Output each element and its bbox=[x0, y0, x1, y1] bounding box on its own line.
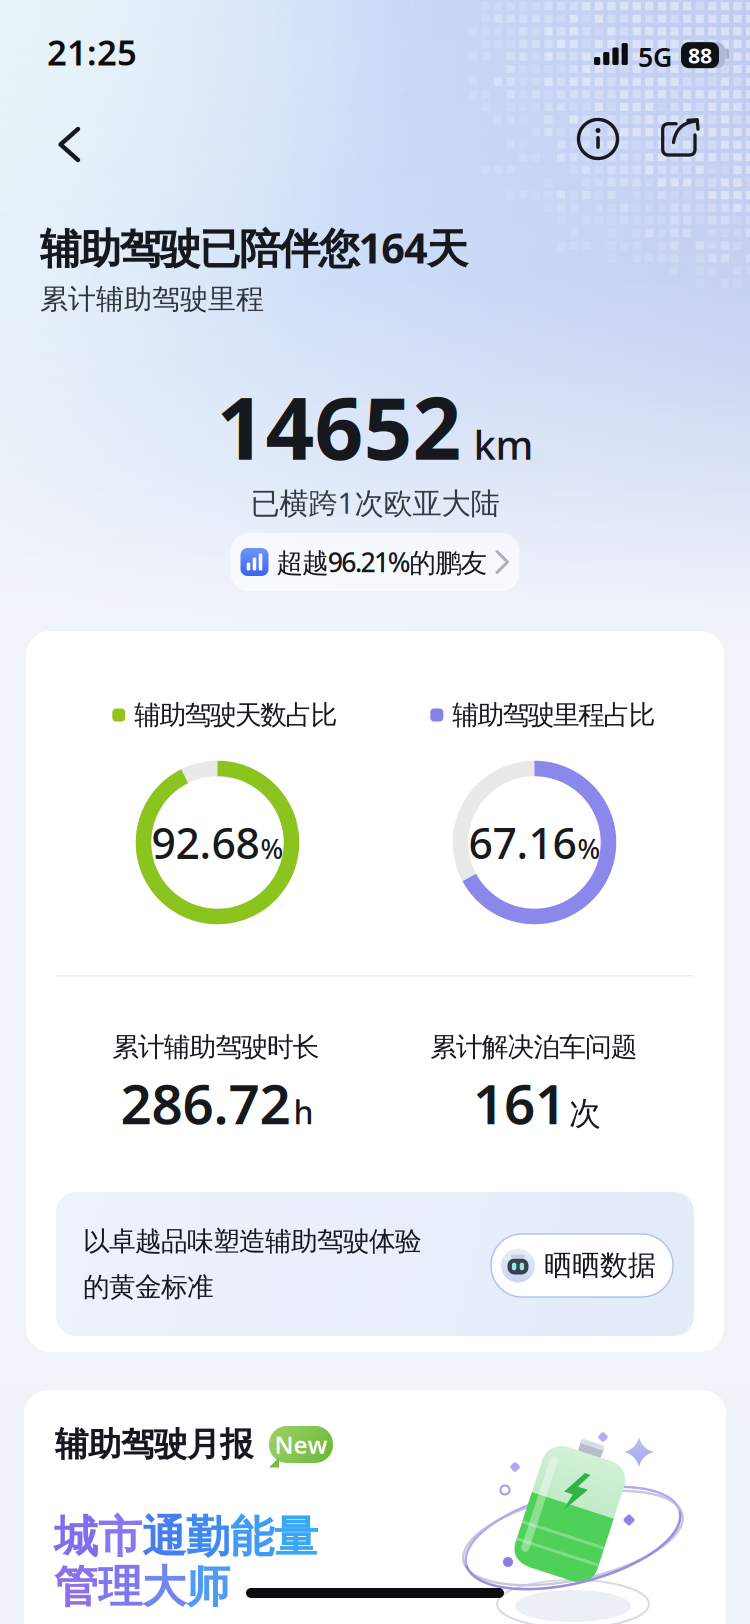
staticText: 辅助驾驶已陪伴您164天 bbox=[40, 220, 468, 275]
staticText: 量 bbox=[274, 1510, 318, 1564]
staticText: % bbox=[577, 831, 600, 866]
staticText: 师 bbox=[186, 1560, 230, 1614]
staticText: 辅助驾驶里程占比 bbox=[452, 699, 656, 731]
button[interactable]: Back bbox=[49, 118, 90, 171]
staticText: km bbox=[473, 418, 533, 471]
staticText: 辅助驾驶月报 bbox=[55, 1424, 253, 1465]
button[interactable]: 晒晒数据 bbox=[491, 1234, 673, 1297]
staticText: 67.16 bbox=[468, 814, 576, 871]
staticText: 晒晒数据 bbox=[544, 1248, 656, 1283]
button[interactable]: Info bbox=[572, 113, 624, 165]
staticText: 累计辅助驾驶时长 bbox=[112, 1031, 320, 1063]
staticText: 已横跨1次欧亚大陆 bbox=[250, 483, 499, 522]
button[interactable]: 辅助驾驶月报 bbox=[24, 1390, 726, 1624]
staticText: 的黄金标准 bbox=[83, 1271, 214, 1304]
staticText: 14652 bbox=[216, 370, 461, 483]
staticText: 286.72 bbox=[120, 1067, 290, 1139]
button[interactable]: Share bbox=[654, 115, 704, 163]
staticText: 以卓越品味塑造辅助驾驶体验 bbox=[83, 1225, 422, 1258]
button[interactable]: 超越96.21%的鹏友 bbox=[230, 533, 519, 591]
staticText: 92.68 bbox=[151, 814, 259, 871]
staticText: New bbox=[274, 1428, 327, 1460]
staticText: 能 bbox=[230, 1510, 274, 1564]
staticText: 21:25 bbox=[47, 29, 137, 75]
staticText: 城 bbox=[54, 1510, 98, 1564]
staticText: 161 bbox=[473, 1067, 566, 1139]
staticText: 次 bbox=[569, 1094, 601, 1133]
staticText: 勤 bbox=[186, 1510, 230, 1564]
staticText: 大 bbox=[142, 1560, 186, 1614]
staticText: 管 bbox=[54, 1560, 98, 1614]
staticText: 累计解决泊车问题 bbox=[430, 1031, 638, 1063]
staticText: 5G bbox=[638, 39, 672, 74]
staticText: 辅助驾驶天数占比 bbox=[134, 699, 338, 731]
staticText: 累计辅助驾驶里程 bbox=[40, 282, 264, 316]
staticText: % bbox=[260, 831, 283, 866]
staticText: 88 bbox=[688, 41, 712, 69]
staticText: 超越96.21%的鹏友 bbox=[276, 544, 487, 580]
staticText: 理 bbox=[98, 1560, 142, 1614]
staticText: 市 bbox=[98, 1510, 142, 1564]
staticText: 通 bbox=[142, 1510, 186, 1564]
staticText: h bbox=[293, 1090, 313, 1133]
